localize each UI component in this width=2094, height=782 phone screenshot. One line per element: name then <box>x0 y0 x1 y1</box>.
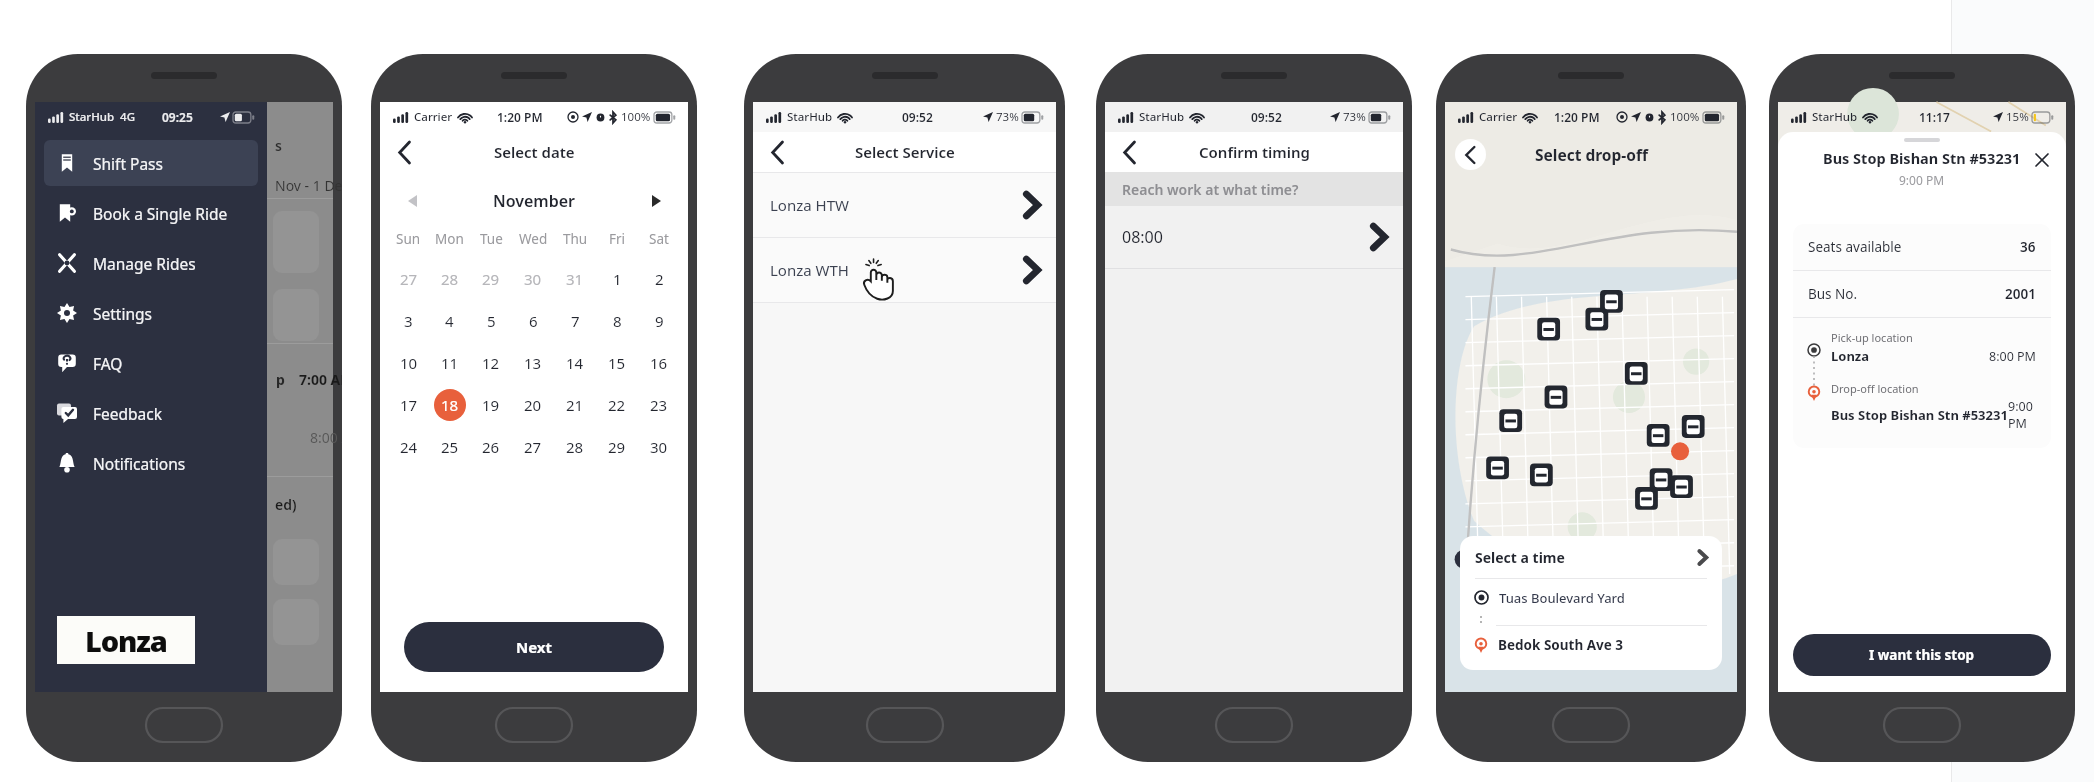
staticText: 09:52 <box>902 109 933 125</box>
button[interactable]: 27 <box>512 426 554 468</box>
button[interactable]: FAQ <box>44 340 258 386</box>
button[interactable]: 8 <box>596 300 638 342</box>
staticText: 14 <box>566 353 584 373</box>
button[interactable]: Lonza HTW <box>753 173 1056 237</box>
staticText: Lonza WTH <box>770 260 849 280</box>
staticText: Seats available <box>1808 238 1902 256</box>
staticText: November <box>424 190 644 212</box>
staticText: Select a time <box>1475 548 1565 567</box>
button[interactable]: Back <box>1113 135 1147 169</box>
button[interactable]: 15 <box>596 342 638 384</box>
staticText: Thu <box>563 230 588 248</box>
staticText: Mon <box>435 230 464 248</box>
staticText: Confirm timing <box>1199 142 1310 162</box>
staticText: Next <box>516 637 553 657</box>
button[interactable]: 18 <box>429 384 470 426</box>
button[interactable]: 5 <box>470 300 512 342</box>
button[interactable]: 14 <box>554 342 596 384</box>
button[interactable]: Back <box>1455 139 1486 170</box>
button[interactable]: 16 <box>638 342 680 384</box>
staticText: Lonza HTW <box>770 195 849 215</box>
button[interactable]: 11 <box>429 342 470 384</box>
button[interactable]: 3 <box>388 300 429 342</box>
staticText: 27 <box>400 269 418 289</box>
staticText: 22 <box>608 395 626 415</box>
button[interactable]: 9 <box>638 300 680 342</box>
button[interactable]: 29 <box>470 258 512 300</box>
staticText: 23 <box>650 395 668 415</box>
button[interactable]: 17 <box>388 384 429 426</box>
staticText: 12 <box>482 353 500 373</box>
staticText: Sat <box>649 230 669 248</box>
button[interactable]: Book a Single Ride <box>44 190 258 236</box>
button[interactable]: 30 <box>512 258 554 300</box>
button[interactable]: Feedback <box>44 390 258 436</box>
button[interactable]: 23 <box>638 384 680 426</box>
button[interactable]: Back <box>761 135 795 169</box>
staticText: 09:25 <box>162 109 193 125</box>
staticText: 26 <box>482 437 500 457</box>
staticText: Shift Pass <box>93 153 163 174</box>
staticText: 9:00 PM <box>2008 398 2036 432</box>
staticText: 09:52 <box>1251 109 1282 125</box>
button[interactable]: 19 <box>470 384 512 426</box>
button[interactable]: 4 <box>429 300 470 342</box>
button[interactable]: 6 <box>512 300 554 342</box>
button[interactable]: Close <box>2026 144 2058 176</box>
staticText: Lonza <box>85 621 167 660</box>
button[interactable]: 28 <box>429 258 470 300</box>
button[interactable]: 1 <box>596 258 638 300</box>
staticText: 100% <box>1670 109 1700 125</box>
staticText: 21 <box>566 395 584 415</box>
staticText: 17 <box>400 395 418 415</box>
staticText: 31 <box>566 269 584 289</box>
staticText: 30 <box>650 437 668 457</box>
button[interactable]: Manage Rides <box>44 240 258 286</box>
button[interactable]: Tuas Boulevard Yard <box>1460 579 1722 616</box>
button[interactable]: Notifications <box>44 440 258 486</box>
staticText: Tue <box>480 230 503 248</box>
staticText: 18 <box>441 395 459 415</box>
staticText: FAQ <box>93 353 123 374</box>
staticText: Tuas Boulevard Yard <box>1499 589 1625 607</box>
button[interactable]: 2 <box>638 258 680 300</box>
staticText: Nov - 1 Dec <box>275 176 342 195</box>
button[interactable]: 27 <box>388 258 429 300</box>
button[interactable]: 20 <box>512 384 554 426</box>
button[interactable]: Select a time <box>1460 536 1722 578</box>
button[interactable]: Previous month <box>400 189 424 213</box>
staticText: 28 <box>566 437 584 457</box>
staticText: Reach work at what time? <box>1122 180 1299 199</box>
staticText: 9:00 PM <box>1899 172 1945 188</box>
button[interactable]: 08:00 <box>1105 206 1403 268</box>
button[interactable]: 30 <box>638 426 680 468</box>
button[interactable]: 13 <box>512 342 554 384</box>
button[interactable]: 28 <box>554 426 596 468</box>
button[interactable]: 10 <box>388 342 429 384</box>
button[interactable]: 22 <box>596 384 638 426</box>
button[interactable]: 29 <box>596 426 638 468</box>
button[interactable]: 12 <box>470 342 512 384</box>
staticText: 8 <box>613 311 622 331</box>
button[interactable]: Next month <box>644 189 668 213</box>
staticText: 1:20 PM <box>497 109 543 125</box>
staticText: 7:00 AM <box>299 370 342 389</box>
button[interactable]: I want this stop <box>1793 634 2051 676</box>
button[interactable]: Bedok South Ave 3 <box>1460 626 1722 664</box>
button[interactable]: 7 <box>554 300 596 342</box>
button[interactable]: 24 <box>388 426 429 468</box>
button[interactable]: Next <box>404 622 664 672</box>
button[interactable]: Back <box>388 135 422 169</box>
staticText: Sun <box>396 230 421 248</box>
button[interactable]: Lonza WTH <box>753 238 1056 302</box>
button[interactable]: Shift Pass <box>44 140 258 186</box>
button[interactable]: Settings <box>44 290 258 336</box>
button[interactable]: 21 <box>554 384 596 426</box>
staticText: Select Service <box>855 142 955 162</box>
button[interactable]: 25 <box>429 426 470 468</box>
button[interactable]: 26 <box>470 426 512 468</box>
staticText: Lonza <box>1831 347 1870 365</box>
staticText: 29 <box>608 437 626 457</box>
button[interactable]: 31 <box>554 258 596 300</box>
staticText: 1:20 PM <box>1554 109 1600 125</box>
